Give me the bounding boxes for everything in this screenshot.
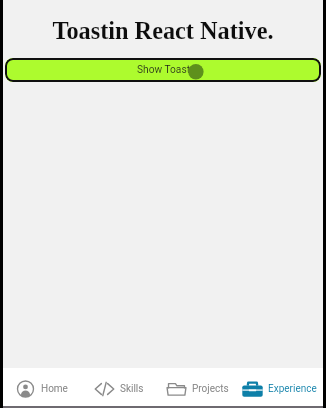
button[interactable]: Home: [3, 368, 80, 406]
staticText: Toastin React Native.: [3, 17, 323, 44]
button[interactable]: Show Toast: [5, 58, 321, 82]
button[interactable]: Projects: [158, 368, 236, 406]
staticText: Home: [41, 383, 68, 395]
staticText: Show Toast: [137, 64, 190, 76]
button[interactable]: Skills: [80, 368, 158, 406]
staticText: Projects: [192, 383, 229, 395]
button[interactable]: Experience: [236, 368, 323, 406]
staticText: Skills: [120, 383, 144, 395]
staticText: Experience: [268, 383, 317, 395]
